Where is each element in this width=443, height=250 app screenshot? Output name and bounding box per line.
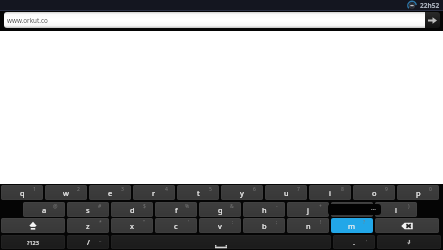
button[interactable]: Go — [425, 12, 440, 28]
button[interactable]: r — [133, 185, 175, 200]
staticText: . — [353, 237, 356, 247]
staticText: c — [174, 221, 178, 231]
button[interactable]: w — [45, 185, 87, 200]
staticText: ! — [320, 219, 322, 226]
staticText: ? — [363, 219, 366, 226]
staticText: y — [240, 188, 244, 198]
staticText: o — [372, 188, 377, 198]
staticText: " — [143, 219, 146, 226]
staticText: j — [307, 205, 309, 215]
button[interactable]: x — [111, 218, 153, 233]
staticText: / — [87, 237, 90, 247]
button[interactable]: e — [89, 185, 131, 200]
staticText: 3 — [121, 186, 124, 193]
button[interactable]: . — [333, 235, 375, 249]
staticText: ( — [364, 203, 366, 210]
staticText: www.orkut.co — [7, 16, 48, 25]
staticText: - — [276, 203, 278, 210]
button[interactable]: o — [353, 185, 395, 200]
staticText: q — [20, 188, 25, 198]
staticText: 22h52 — [420, 1, 440, 10]
staticText: 8 — [341, 186, 344, 193]
staticText: 7 — [297, 186, 300, 193]
button[interactable]: p — [397, 185, 439, 200]
button[interactable]: h — [243, 202, 285, 217]
staticText: n — [306, 221, 311, 231]
staticText: 4 — [165, 186, 168, 193]
button[interactable]: Backspace — [375, 218, 439, 233]
staticText: l — [395, 205, 397, 215]
button[interactable]: i — [309, 185, 351, 200]
staticText: 9 — [385, 186, 388, 193]
staticText: 0 — [429, 186, 432, 193]
staticText: 1 — [33, 186, 36, 193]
button[interactable]: d — [111, 202, 153, 217]
staticText: s — [86, 205, 90, 215]
button[interactable]: u — [265, 185, 307, 200]
button[interactable]: t — [177, 185, 219, 200]
staticText: , — [366, 236, 368, 243]
button[interactable]: q — [1, 185, 43, 200]
staticText: x — [130, 221, 134, 231]
button[interactable]: Shift — [1, 218, 65, 233]
staticText: & — [230, 203, 234, 210]
button[interactable]: z — [67, 218, 109, 233]
staticText: f — [175, 205, 178, 215]
button[interactable]: s — [67, 202, 109, 217]
staticText: z — [86, 221, 90, 231]
staticText: + — [319, 203, 322, 210]
staticText: m — [348, 221, 356, 231]
button[interactable]: Space — [111, 235, 331, 249]
staticText: @ — [53, 203, 58, 210]
button[interactable]: k — [331, 202, 373, 217]
staticText: a — [42, 205, 47, 215]
staticText: u — [284, 188, 289, 198]
button[interactable]: j — [287, 202, 329, 217]
button[interactable]: l — [375, 202, 417, 217]
staticText: ' — [188, 219, 190, 226]
staticText: r — [152, 188, 156, 198]
staticText: # — [98, 203, 102, 210]
staticText: 6 — [253, 186, 256, 193]
staticText: 5 — [209, 186, 212, 193]
staticText: _ — [99, 236, 102, 243]
button[interactable]: y — [221, 185, 263, 200]
button[interactable]: n — [287, 218, 329, 233]
button[interactable]: v — [199, 218, 241, 233]
staticText: p — [416, 188, 421, 198]
button[interactable]: b — [243, 218, 285, 233]
staticText: ) — [408, 203, 410, 210]
staticText: t — [197, 188, 200, 198]
button[interactable]: m — [331, 218, 373, 233]
staticText: ; — [276, 219, 278, 226]
staticText: i — [329, 188, 331, 198]
staticText: $ — [143, 203, 146, 210]
staticText: h — [262, 205, 267, 215]
staticText: ?123 — [27, 239, 39, 246]
staticText: g — [218, 205, 223, 215]
button[interactable]: More characters — [328, 204, 381, 215]
staticText: v — [218, 221, 222, 231]
button[interactable]: c — [155, 218, 197, 233]
staticText: ... — [371, 204, 376, 212]
staticText: b — [262, 221, 267, 231]
button[interactable]: g — [199, 202, 241, 217]
staticText: : — [232, 219, 234, 226]
button[interactable]: f — [155, 202, 197, 217]
staticText: 2 — [77, 186, 80, 193]
button[interactable]: www.orkut.co — [4, 12, 425, 28]
staticText: d — [130, 205, 135, 215]
staticText: e — [108, 188, 113, 198]
button[interactable]: ?123 — [1, 235, 65, 249]
staticText: * — [99, 219, 102, 226]
staticText: w — [63, 188, 69, 198]
button[interactable]: Enter — [377, 235, 441, 249]
button[interactable]: / — [67, 235, 109, 249]
button[interactable]: a — [23, 202, 65, 217]
staticText: % — [185, 203, 190, 210]
